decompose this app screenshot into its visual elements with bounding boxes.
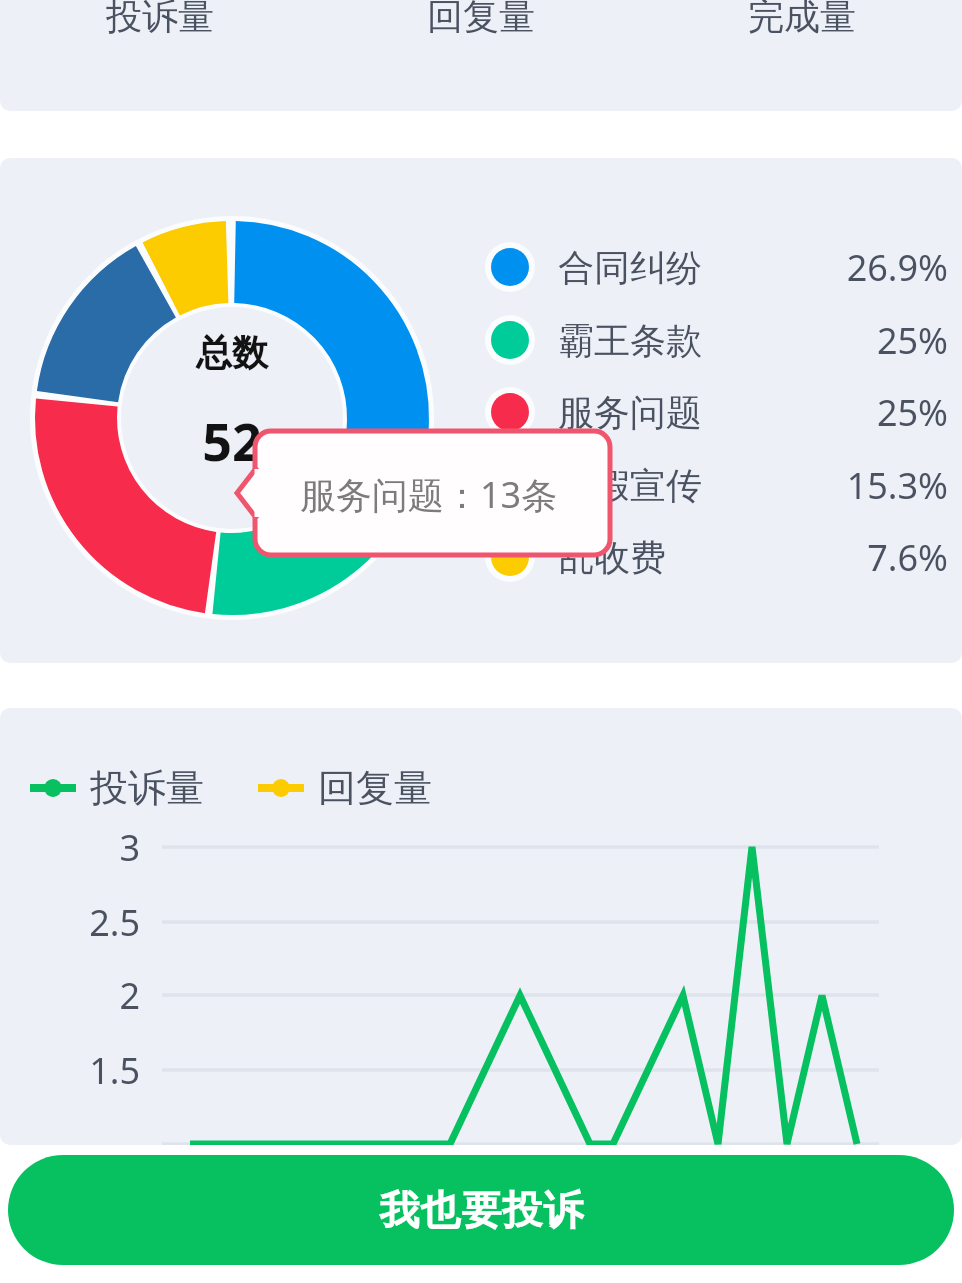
staticText: 回复量: [427, 0, 535, 39]
button[interactable]: 回复量: [320, 0, 641, 39]
staticText: 26.9%: [846, 243, 948, 292]
staticText: 2.5: [89, 898, 140, 947]
button[interactable]: 虚假宣传: [478, 459, 948, 511]
button[interactable]: 乱收费: [478, 531, 948, 583]
button[interactable]: 投诉量: [0, 0, 320, 39]
staticText: 投诉量: [90, 764, 204, 812]
staticText: 7.6%: [867, 533, 948, 582]
button[interactable]: 霸王条款: [478, 314, 948, 366]
staticText: 虚假宣传: [558, 463, 702, 508]
staticText: 乱收费: [558, 535, 666, 580]
staticText: 总数: [196, 330, 268, 375]
staticText: 15.3%: [846, 461, 948, 510]
staticText: 我也要投诉: [379, 1185, 584, 1235]
staticText: 25%: [876, 316, 948, 365]
staticText: 回复量: [318, 764, 432, 812]
staticText: 完成量: [748, 0, 856, 39]
staticText: 2: [119, 971, 140, 1020]
button[interactable]: 合同纠纷: [478, 241, 948, 293]
staticText: 服务问题: [558, 390, 702, 435]
staticText: 1.5: [89, 1046, 140, 1095]
staticText: 投诉量: [106, 0, 214, 39]
button[interactable]: 完成量: [641, 0, 962, 39]
button[interactable]: 我也要投诉: [8, 1155, 954, 1265]
staticText: 52: [202, 405, 262, 476]
staticText: 霸王条款: [558, 318, 702, 363]
staticText: 合同纠纷: [558, 245, 702, 290]
staticText: 25%: [876, 388, 948, 437]
staticText: 3: [119, 823, 140, 872]
button[interactable]: 服务问题: [478, 386, 948, 438]
staticText: 服务问题：13条: [300, 470, 558, 519]
